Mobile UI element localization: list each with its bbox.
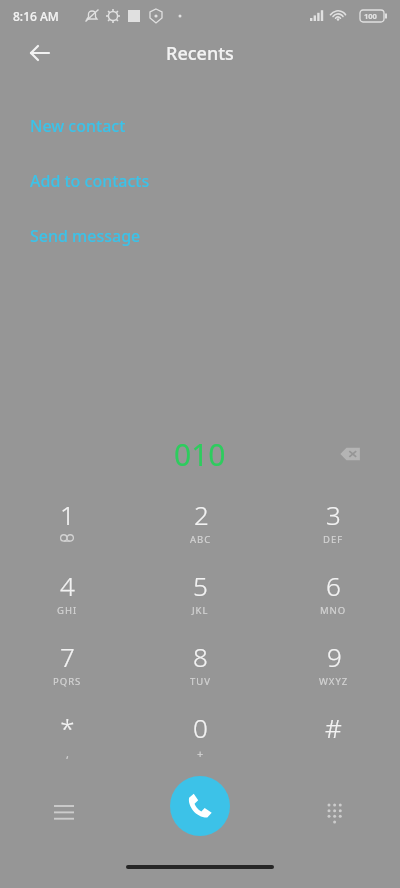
staticText: Recents (166, 41, 234, 66)
button[interactable]: Add to contacts (30, 170, 252, 225)
button[interactable]: Send message (30, 225, 252, 280)
staticText: 8 (193, 639, 208, 674)
button[interactable]: 0 (134, 705, 267, 776)
button[interactable]: 9 (267, 634, 400, 705)
staticText: * (60, 710, 75, 745)
button[interactable]: 6 (267, 563, 400, 634)
button[interactable]: Call (170, 776, 230, 836)
button[interactable]: 1 (0, 492, 134, 563)
staticText: 6 (326, 568, 341, 603)
staticText: MNO (320, 604, 347, 617)
staticText: WXYZ (319, 675, 349, 688)
staticText: 7 (60, 639, 75, 674)
button[interactable]: * (0, 705, 134, 776)
staticText: TUV (190, 675, 211, 688)
staticText: 8:16 AM (13, 8, 59, 24)
staticText: , (66, 746, 70, 761)
staticText: 3 (326, 497, 341, 532)
staticText: 5 (193, 568, 208, 603)
button[interactable]: 7 (0, 634, 134, 705)
staticText: 4 (60, 568, 75, 603)
button[interactable]: # (267, 705, 400, 776)
staticText: DEF (323, 533, 344, 546)
staticText: 010 (174, 434, 226, 475)
button[interactable]: Backspace (328, 432, 372, 476)
button[interactable]: 4 (0, 563, 134, 634)
staticText: 0 (193, 710, 208, 745)
staticText: ABC (190, 533, 212, 546)
button[interactable]: Back (18, 31, 62, 75)
staticText: GHI (57, 604, 78, 617)
button[interactable]: Menu (42, 790, 86, 834)
button[interactable]: 2 (134, 492, 267, 563)
button[interactable]: 3 (267, 492, 400, 563)
staticText: # (325, 710, 342, 745)
button[interactable]: Dialpad (314, 790, 358, 834)
staticText: PQRS (53, 675, 82, 688)
staticText: New contact (30, 115, 126, 137)
staticText: Send message (30, 225, 141, 247)
staticText: 2 (194, 497, 209, 532)
staticText: JKL (192, 604, 209, 617)
button[interactable]: New contact (30, 115, 252, 170)
staticText: Add to contacts (30, 170, 150, 192)
staticText: 9 (327, 639, 342, 674)
staticText: 100 (364, 11, 377, 21)
staticText: 1 (60, 497, 75, 532)
button[interactable]: 5 (134, 563, 267, 634)
button[interactable]: 8 (134, 634, 267, 705)
staticText: + (197, 746, 205, 761)
